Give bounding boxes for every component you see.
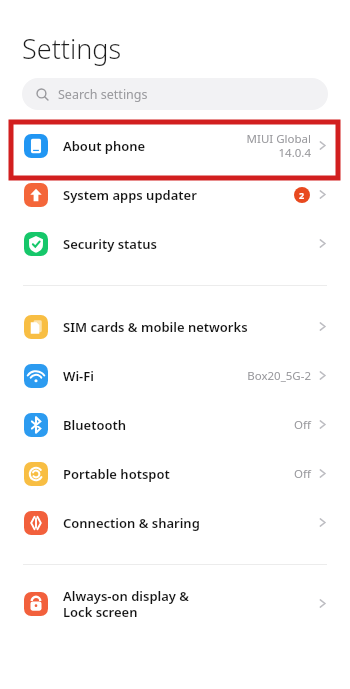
button[interactable]: Connection and sharing: [0, 498, 350, 547]
other: Always-on display and Lock screen: [24, 592, 48, 616]
button[interactable]: Wi-Fi: [0, 351, 350, 400]
staticText: Off: [294, 466, 311, 482]
staticText: Settings: [22, 30, 122, 67]
button[interactable]: About phone: [0, 121, 350, 170]
staticText: 2: [299, 189, 305, 201]
button[interactable]: Security status: [0, 219, 350, 268]
other: Connection and sharing: [24, 511, 48, 535]
other: SIM cards and mobile networks: [24, 315, 48, 339]
staticText: SIM cards & mobile networks: [63, 318, 248, 336]
other: Security status: [24, 232, 48, 256]
staticText: Always-on display & Lock screen: [63, 587, 220, 620]
staticText: Off: [294, 417, 311, 433]
other: System apps updater: [24, 183, 48, 207]
staticText: System apps updater: [63, 186, 197, 204]
staticText: Box20_5G-2: [247, 368, 311, 384]
staticText: MIUI Global 14.0.4: [246, 131, 311, 160]
other: Wi-Fi: [24, 364, 48, 388]
button[interactable]: Portable hotspot: [0, 449, 350, 498]
button[interactable]: SIM cards and mobile networks: [0, 302, 350, 351]
staticText: Bluetooth: [63, 416, 127, 434]
staticText: Security status: [63, 235, 157, 253]
button[interactable]: System apps updater: [0, 170, 350, 219]
staticText: Search settings: [58, 86, 148, 103]
staticText: Connection & sharing: [63, 514, 200, 532]
other: Portable hotspot: [24, 462, 48, 486]
button[interactable]: Bluetooth: [0, 400, 350, 449]
staticText: Portable hotspot: [63, 465, 170, 483]
button[interactable]: Search settings: [22, 78, 328, 110]
other: Bluetooth: [24, 413, 48, 437]
staticText: Wi-Fi: [63, 367, 94, 385]
staticText: About phone: [63, 137, 146, 155]
button[interactable]: Always-on display and Lock screen: [0, 579, 350, 628]
other: About phone: [24, 134, 48, 158]
